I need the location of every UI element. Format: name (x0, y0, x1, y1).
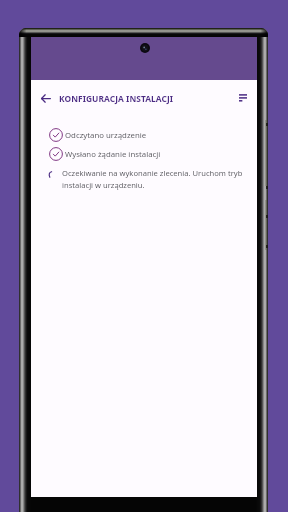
staticText: KONFIGURACJA INSTALACJI (59, 93, 174, 104)
button[interactable]: Odczytano urządzenie (49, 128, 147, 142)
button[interactable]: Oczekiwanie na wykonanie zlecenia. Uruch… (62, 168, 245, 190)
button[interactable]: Sort (230, 85, 256, 111)
staticText: Odczytano urządzenie (65, 130, 147, 141)
button[interactable]: Back (33, 85, 59, 111)
button[interactable]: Wysłano żądanie instalacji (49, 147, 161, 161)
staticText: Wysłano żądanie instalacji (65, 149, 161, 160)
